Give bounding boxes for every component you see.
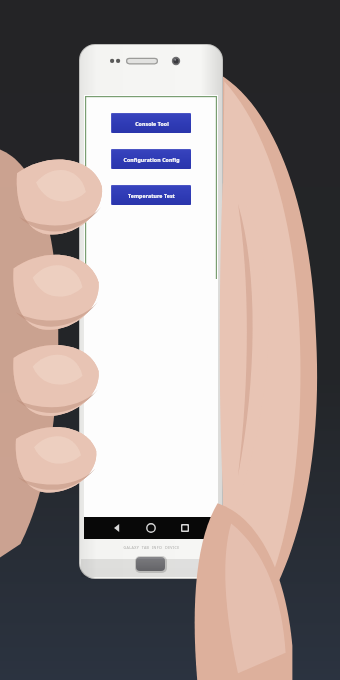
button[interactable]: Configuration Config <box>111 149 191 169</box>
button[interactable]: Console Tool <box>111 113 191 133</box>
button[interactable]: Temperature Test <box>111 185 191 205</box>
staticText: GALAXY TAB INFO DEVICE <box>123 545 180 550</box>
button[interactable]: Home <box>135 556 167 573</box>
staticText: Temperature Test <box>128 192 175 199</box>
staticText: Configuration Config <box>123 156 180 163</box>
staticText: Console Tool <box>135 120 169 127</box>
